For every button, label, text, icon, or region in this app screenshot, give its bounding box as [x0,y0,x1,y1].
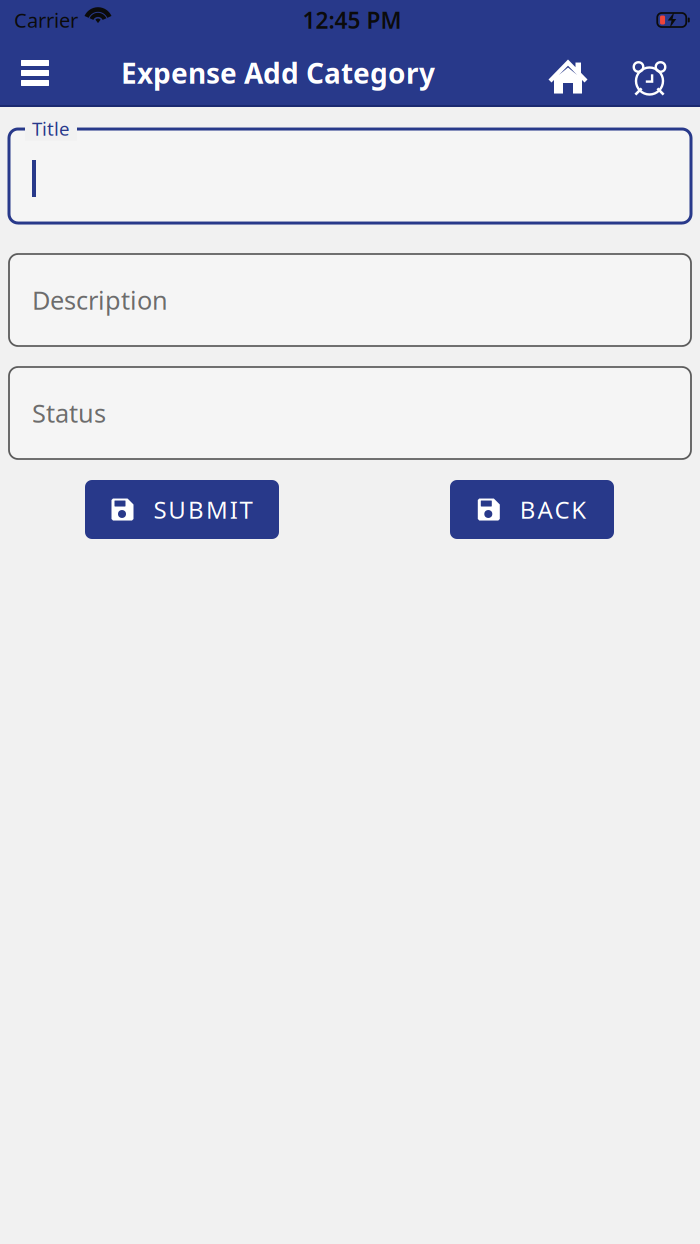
staticText: B [188,494,204,525]
staticText: Title [32,116,70,141]
staticText: B [520,494,536,525]
button[interactable]: S [85,480,279,539]
button[interactable]: Reminders [621,40,678,106]
staticText: K [571,494,586,525]
staticText: T [239,494,252,525]
staticText: U [168,494,186,525]
staticText: I [230,494,238,525]
staticText: C [554,494,569,525]
staticText: Expense Add Category [121,54,435,92]
staticText: Status [32,396,106,430]
staticText: A [538,494,553,525]
staticText: Carrier [14,7,78,33]
button[interactable]: Menu [7,40,63,106]
staticText: S [153,494,166,525]
button[interactable]: Home [515,40,621,106]
button[interactable]: B [450,480,614,539]
staticText: M [206,494,228,525]
staticText: Description [32,283,168,317]
staticText: 12:45 PM [302,5,401,35]
